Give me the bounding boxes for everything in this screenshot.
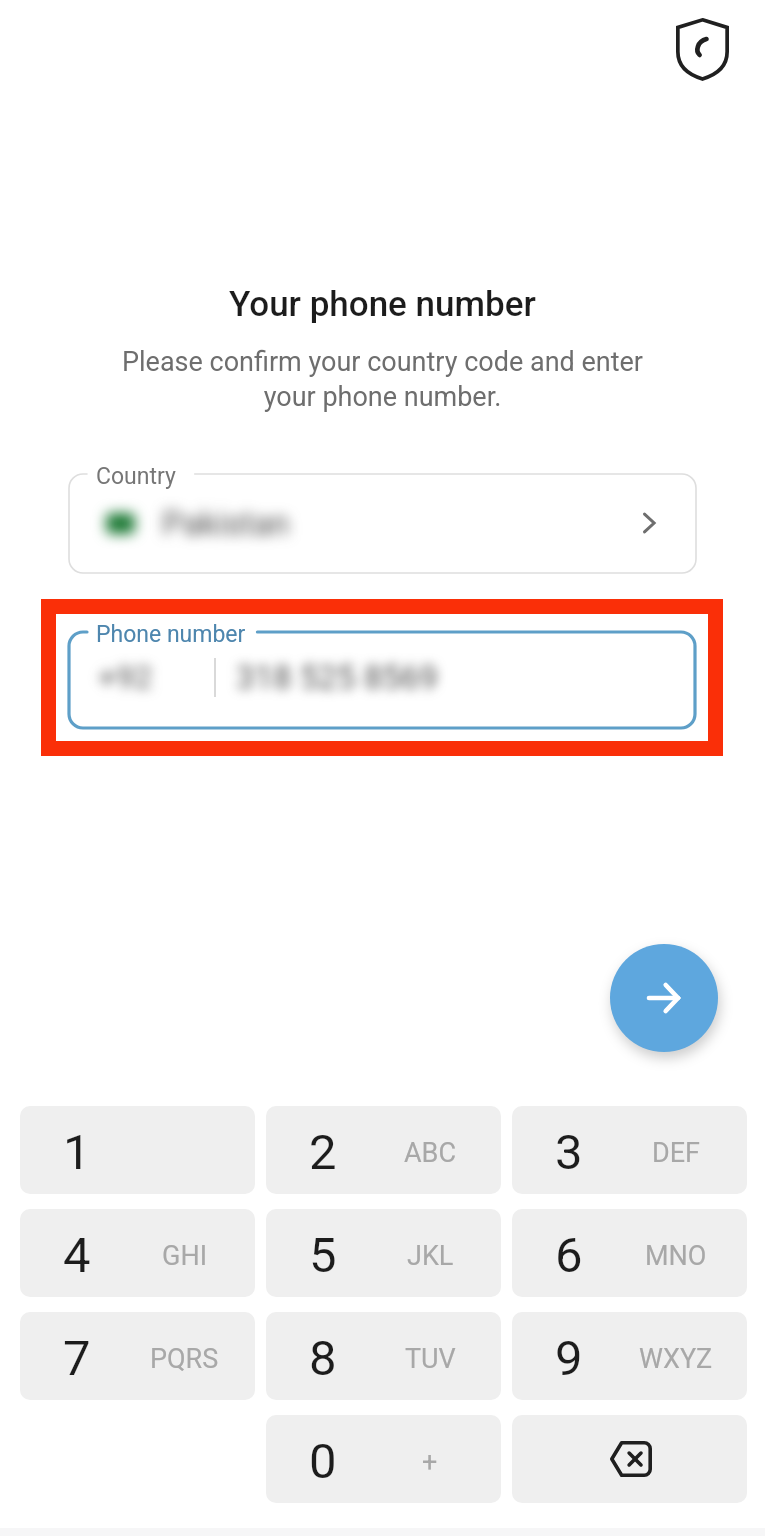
staticText: 5 bbox=[309, 1227, 337, 1284]
staticText: 9 bbox=[555, 1330, 583, 1387]
staticText: Phone number bbox=[96, 621, 246, 648]
button[interactable]: 4 bbox=[20, 1209, 255, 1297]
button[interactable]: 8 bbox=[266, 1312, 501, 1400]
button[interactable]: Next bbox=[610, 944, 718, 1052]
staticText: 7 bbox=[63, 1330, 91, 1387]
button[interactable]: Pakistan bbox=[69, 474, 696, 573]
staticText: TUV bbox=[405, 1343, 456, 1375]
staticText: WXYZ bbox=[639, 1343, 713, 1375]
staticText: 1 bbox=[63, 1124, 91, 1181]
staticText: 8 bbox=[309, 1330, 337, 1387]
staticText: Country bbox=[96, 463, 176, 490]
button[interactable]: 6 bbox=[512, 1209, 747, 1297]
button[interactable]: 7 bbox=[20, 1312, 255, 1400]
button[interactable]: 3 bbox=[512, 1106, 747, 1194]
staticText: 318 525 8569 bbox=[236, 658, 438, 697]
button[interactable]: 2 bbox=[266, 1106, 501, 1194]
staticText: 3 bbox=[555, 1124, 583, 1181]
button[interactable]: Privacy bbox=[660, 6, 744, 90]
staticText: +92 bbox=[98, 658, 153, 696]
staticText: JKL bbox=[407, 1240, 454, 1272]
staticText: Please confirm your country code and ent… bbox=[100, 346, 665, 412]
staticText: 6 bbox=[555, 1227, 583, 1284]
staticText: GHI bbox=[162, 1240, 207, 1272]
staticText: Your phone number bbox=[229, 284, 536, 325]
staticText: 4 bbox=[63, 1227, 91, 1284]
button[interactable]: +92 bbox=[69, 632, 695, 728]
staticText: 0 bbox=[309, 1433, 337, 1490]
button[interactable]: 9 bbox=[512, 1312, 747, 1400]
button[interactable]: 1 bbox=[20, 1106, 255, 1194]
staticText: DEF bbox=[652, 1137, 700, 1169]
button[interactable]: 0 bbox=[266, 1415, 501, 1503]
staticText: ABC bbox=[404, 1137, 457, 1169]
staticText: Pakistan bbox=[162, 504, 290, 543]
button[interactable]: 5 bbox=[266, 1209, 501, 1297]
staticText: PQRS bbox=[150, 1343, 219, 1375]
staticText: 2 bbox=[309, 1124, 337, 1181]
staticText: MNO bbox=[645, 1240, 707, 1272]
button[interactable] bbox=[512, 1415, 747, 1503]
staticText: + bbox=[422, 1446, 438, 1478]
